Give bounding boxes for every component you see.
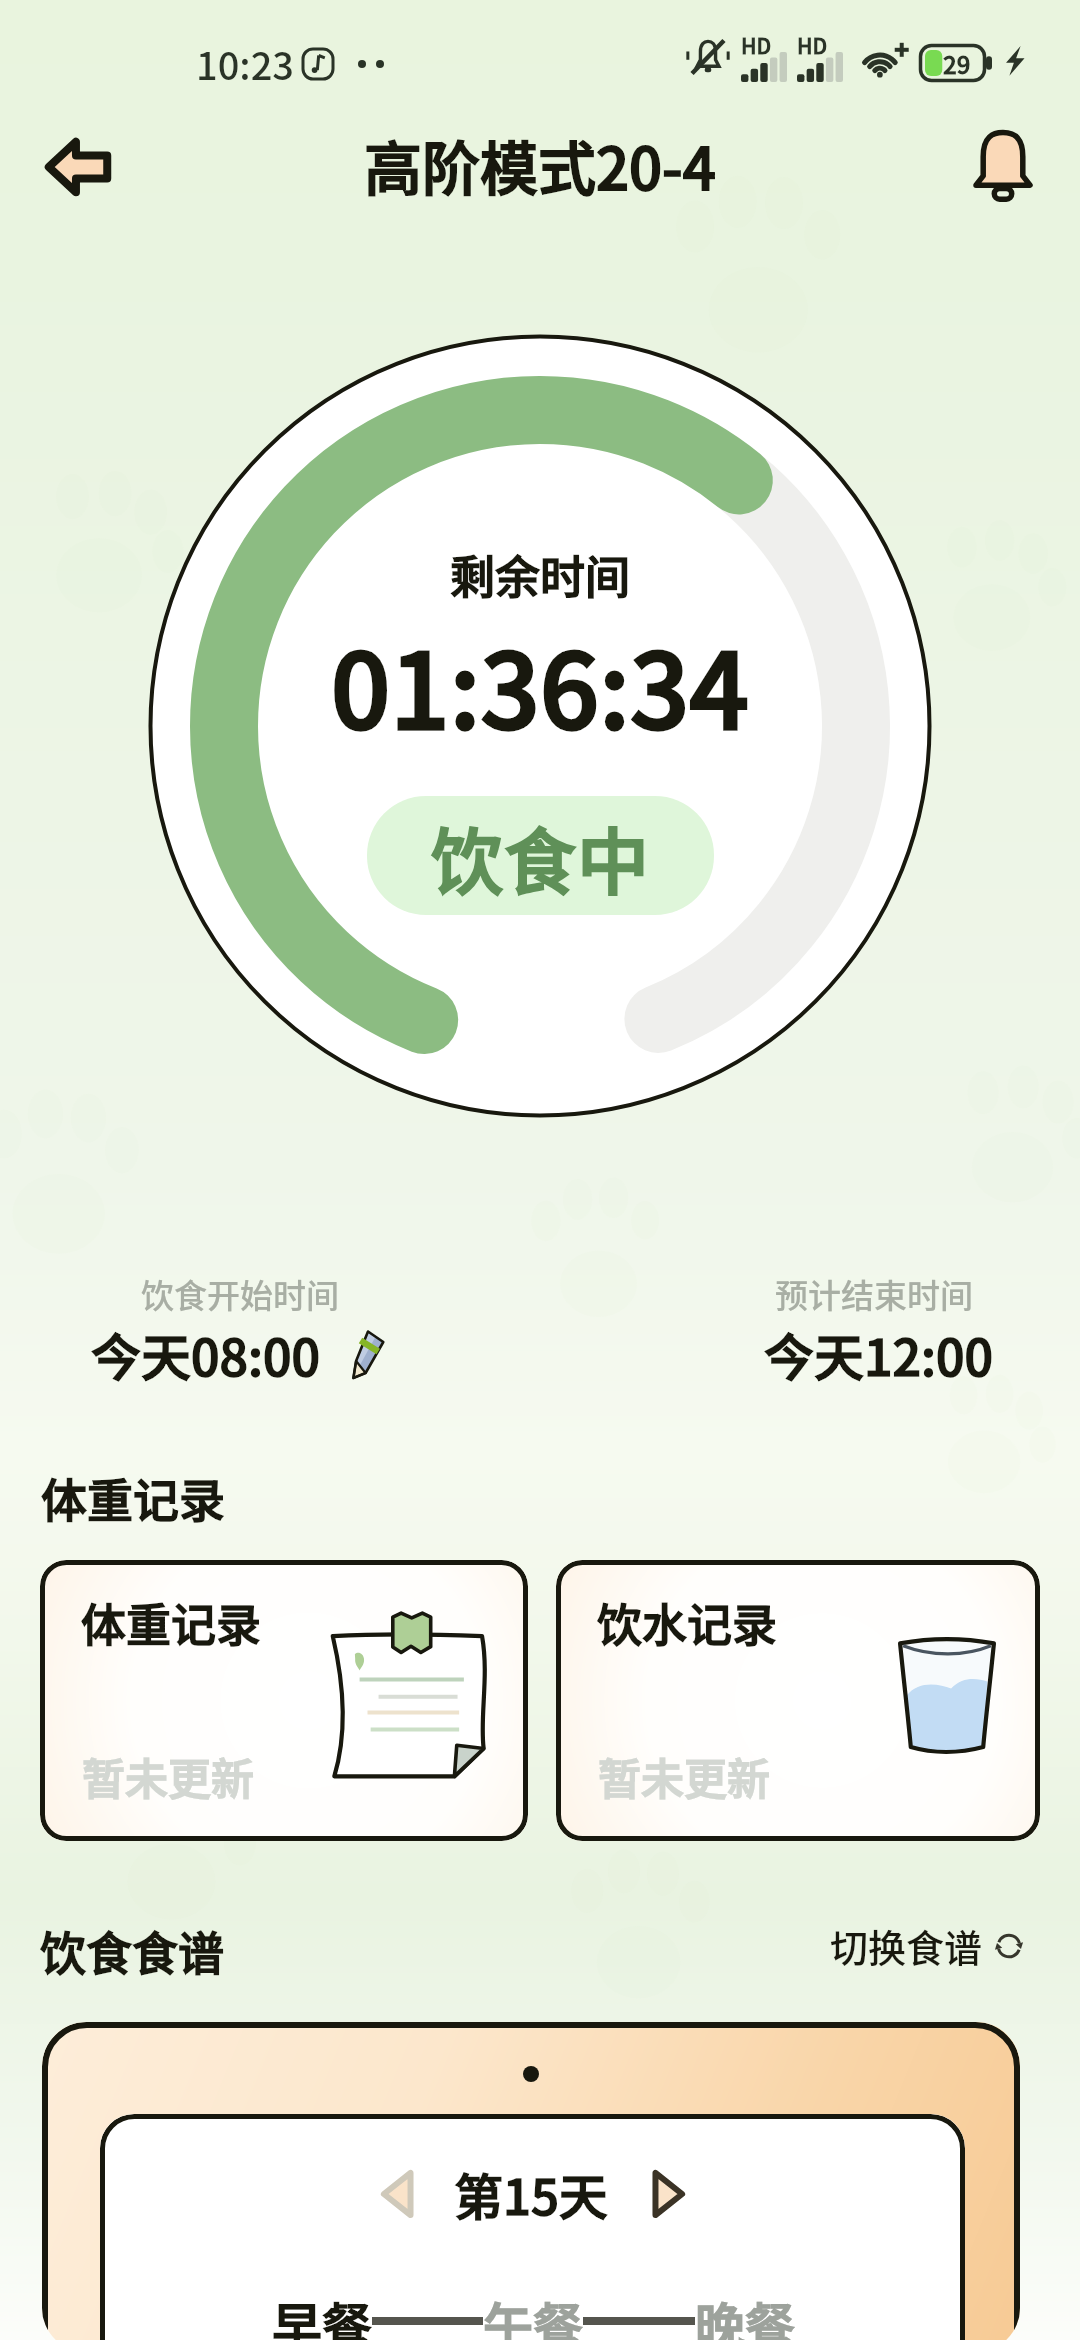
staticText: 29 (943, 46, 971, 81)
staticText: 饮食开始时间 (141, 1270, 339, 1318)
staticText: 暂未更新 (82, 1745, 254, 1807)
staticText: 早餐 (272, 2287, 372, 2340)
button[interactable]: 前一天 (42, 2022, 1020, 2340)
staticText: 预计结束时间 (775, 1270, 973, 1318)
button[interactable]: 编辑开始时间 (342, 1328, 394, 1380)
staticText: HD (741, 30, 772, 60)
staticText: 体重记录 (41, 1464, 225, 1531)
button[interactable]: 体重记录 (40, 1560, 528, 1841)
staticText: 01:36:34 (331, 608, 749, 759)
staticText: 饮水记录 (597, 1590, 778, 1655)
staticText: HD (797, 30, 828, 60)
staticText: 晚餐 (695, 2287, 795, 2340)
staticText: 10:23 (196, 36, 294, 91)
staticText: 切换食谱 (830, 1918, 983, 1973)
staticText: 高阶模式20-4 (364, 123, 716, 207)
staticText: 午餐 (483, 2287, 583, 2340)
staticText: 暂未更新 (598, 1745, 770, 1807)
button[interactable]: 切换食谱 (830, 1918, 1024, 1973)
staticText: 饮食食谱 (40, 1917, 224, 1984)
staticText: 今天08:00 (91, 1318, 320, 1390)
button[interactable]: 返回 (11, 107, 145, 227)
staticText: 体重记录 (81, 1590, 262, 1655)
button[interactable]: 前一天 (369, 2166, 425, 2222)
staticText: 今天12:00 (764, 1318, 993, 1390)
staticText: 第15天 (454, 2158, 608, 2229)
staticText: 饮食中 (431, 804, 651, 908)
button[interactable]: 通知 (948, 112, 1058, 222)
button[interactable]: 饮食中 (367, 796, 714, 915)
button[interactable]: 饮水记录 (556, 1560, 1040, 1841)
button[interactable]: 后一天 (640, 2166, 696, 2222)
staticText: 剩余时间 (450, 542, 631, 607)
